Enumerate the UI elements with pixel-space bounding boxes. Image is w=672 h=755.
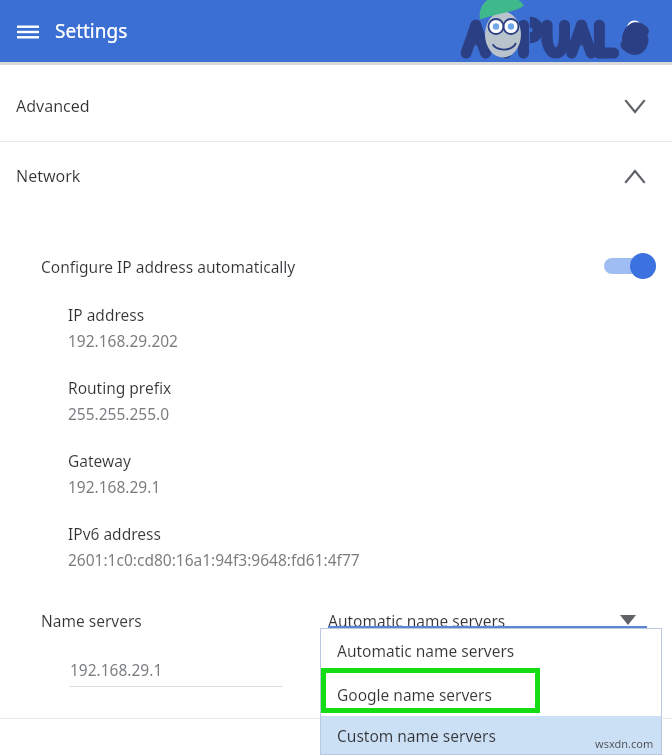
staticText: Configure IP address automatically xyxy=(41,256,296,277)
staticText: 255.255.255.0 xyxy=(68,403,170,424)
staticText: IPv6 address xyxy=(68,523,161,544)
staticText: 2601:1c0:cd80:16a1:94f3:9648:fd61:4f77 xyxy=(68,549,360,570)
staticText: 192.168.29.1 xyxy=(68,476,161,497)
staticText: Google name servers xyxy=(337,684,492,705)
button[interactable]: Menu xyxy=(10,14,46,50)
button[interactable]: Network xyxy=(0,142,672,210)
button[interactable]: Search xyxy=(618,12,654,48)
button[interactable]: Configure IP address automatically toggl… xyxy=(600,249,660,283)
button[interactable]: Automatic name servers xyxy=(328,603,648,637)
staticText: Settings xyxy=(55,18,128,44)
staticText: IP address xyxy=(68,304,145,325)
staticText: Routing prefix xyxy=(68,377,172,398)
staticText: Name servers xyxy=(41,610,142,631)
staticText: Network xyxy=(16,165,626,187)
button[interactable]: Google name servers xyxy=(320,672,662,716)
staticText: Automatic name servers xyxy=(337,640,515,661)
staticText: Advanced xyxy=(16,95,626,117)
staticText: 192.168.29.202 xyxy=(68,330,178,351)
button[interactable]: Advanced xyxy=(0,71,672,141)
staticText: Automatic name servers xyxy=(328,610,620,631)
staticText: 192.168.29.1 xyxy=(70,659,163,680)
staticText: Gateway xyxy=(68,450,131,471)
staticText: wsxdn.com xyxy=(595,736,654,751)
button[interactable]: Automatic name servers xyxy=(320,628,662,672)
staticText: Custom name servers xyxy=(337,725,496,746)
button[interactable]: Custom name servers xyxy=(320,716,662,755)
